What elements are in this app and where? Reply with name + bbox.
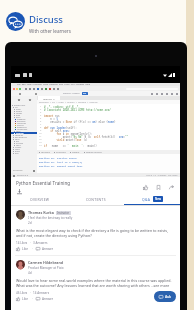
staticText: main.py - project [63, 92, 80, 95]
staticText: 46 Likes [16, 291, 28, 295]
staticText: Python 3.9 [17, 174, 28, 177]
staticText: Output [72, 151, 80, 154]
staticText: import sys [44, 114, 60, 117]
staticText: loader.py [17, 118, 26, 120]
staticText: Carmen Hildebrand [28, 260, 64, 265]
staticText: 5 [40, 117, 42, 120]
staticText: Discuss [29, 13, 63, 26]
staticText: docs [16, 116, 21, 118]
staticText: Answer [42, 247, 54, 251]
staticText: I feel that the best way to really [28, 216, 73, 220]
staticText: config [16, 112, 22, 114]
staticText: UTF-8 LF 4 spaces Git: main [146, 174, 178, 177]
staticText: 8 [40, 126, 42, 129]
staticText: Instructor [57, 211, 70, 215]
staticText: New [155, 197, 161, 201]
staticText: 14 [39, 144, 42, 147]
staticText: 4d [28, 271, 32, 275]
staticText: yield print(True, k) [44, 138, 88, 141]
staticText: for k in range(len(v)): [44, 132, 93, 135]
staticText: src [15, 106, 18, 108]
staticText: if self.args: [44, 129, 71, 132]
staticText: · [30, 241, 31, 245]
staticText: 3 Answers [33, 241, 48, 245]
staticText: tests [16, 130, 21, 132]
staticText: run [83, 92, 87, 95]
staticText: Terminal [41, 151, 50, 154]
staticText: # Copyright 2020-2021 ACME http://acme.o… [44, 108, 111, 111]
staticText: 11 [39, 135, 42, 138]
staticText: Debug Console [86, 151, 102, 154]
staticText: Thomas Kurka [28, 210, 54, 215]
staticText: Like [22, 297, 28, 301]
staticText: utils.py [17, 124, 24, 126]
staticText: Q&A [142, 197, 151, 202]
staticText: data [16, 114, 21, 116]
staticText: 3 [40, 111, 42, 114]
staticText: 10 [39, 132, 42, 135]
staticText: def run_loader(self): [44, 126, 77, 129]
staticText: project-root [14, 104, 26, 106]
staticText: File Edit View Navigate Code Refactor Ru… [17, 83, 90, 86]
staticText: lib64 [16, 144, 21, 146]
staticText: 2d [28, 221, 32, 225]
button[interactable]: OVERVIEW [11, 197, 68, 205]
staticText: results = None if (f(x) == gm) else {nam… [44, 120, 116, 123]
staticText: dist [15, 152, 19, 154]
staticText: runner.py [17, 122, 26, 124]
staticText: 4 [40, 114, 42, 117]
staticText: · [30, 291, 31, 295]
staticText: 1 [40, 105, 42, 108]
button[interactable]: Download [16, 188, 22, 194]
staticText: · [32, 247, 33, 251]
staticText: Answer [42, 297, 54, 301]
button[interactable]: Answer [36, 297, 56, 301]
staticText: scripts [15, 146, 22, 148]
staticText: pyproject > src > main > python > module… [39, 101, 98, 104]
staticText: Written by: Kristof Kurka [39, 156, 77, 159]
staticText: 14 Likes [16, 241, 28, 245]
button[interactable]: Like [16, 297, 30, 301]
button[interactable]: CONTENTS [68, 197, 124, 205]
staticText: 9 [40, 129, 42, 132]
staticText: venv [15, 138, 20, 140]
staticText: 2 [40, 108, 42, 111]
staticText: What is the most elegant way to check if… [16, 228, 175, 238]
staticText: Product Manager at Pixio [28, 266, 64, 270]
button[interactable]: Ask [154, 291, 176, 302]
staticText: Problems [56, 151, 66, 154]
staticText: main.py [16, 132, 24, 134]
button[interactable]: Like [142, 184, 149, 191]
button[interactable]: Share [168, 184, 175, 191]
staticText: if __name__ == '__main__': main() [44, 144, 97, 147]
staticText: config.json [17, 128, 28, 130]
staticText: bin [16, 140, 19, 142]
button[interactable]: Answer [36, 247, 56, 251]
staticText: Structure [13, 169, 23, 172]
button[interactable]: Like [16, 247, 30, 251]
staticText: print("%s %d" % (k, self.fetch(k)), sep=… [44, 135, 129, 138]
staticText: 7 [40, 123, 42, 126]
staticText: # -*- coding: utf-8 -*- [44, 105, 80, 108]
staticText: · [32, 297, 33, 301]
button[interactable]: Q&A [124, 196, 180, 205]
staticText: Python Essential Training [16, 180, 71, 186]
staticText: Would love to hear some real-world examp… [16, 278, 175, 288]
staticText: build [15, 150, 20, 152]
staticText: 13 [39, 141, 42, 144]
button[interactable]: Bookmark [155, 184, 162, 191]
staticText: parser.py [17, 120, 26, 122]
staticText: setup.py [15, 134, 24, 136]
staticText: Ask [165, 294, 171, 299]
staticText: tools [15, 148, 20, 150]
staticText: 6 [40, 120, 42, 123]
staticText: Written by: wright input tidy [39, 164, 83, 167]
staticText: CONTENTS [86, 197, 106, 202]
staticText: models.py [17, 126, 27, 128]
staticText: OVERVIEW [30, 197, 50, 202]
staticText: README.md [15, 136, 27, 138]
staticText: main.py x [43, 97, 55, 100]
staticText: Like [22, 247, 28, 251]
staticText: With other learners [29, 28, 71, 34]
staticText: main [16, 108, 21, 110]
